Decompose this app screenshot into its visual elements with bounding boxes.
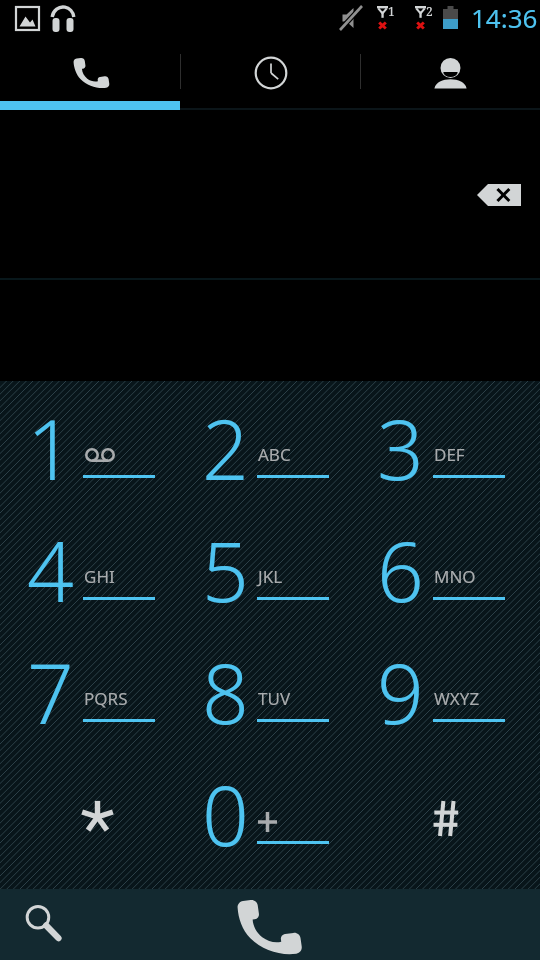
button[interactable]: 6 [354,507,530,627]
button[interactable]: Call log [181,40,360,110]
button[interactable]: Dial pad [0,40,180,110]
button[interactable]: Call [233,893,303,960]
staticText: 6 [377,514,424,626]
staticText: PQRS [84,687,128,710]
staticText: JKL [258,565,283,588]
staticText: 1 [388,3,395,19]
button[interactable]: 0 [178,751,354,871]
button[interactable]: Contacts [361,40,540,110]
staticText: MNO [434,565,476,588]
staticText: ABC [258,443,291,466]
button[interactable]: 3 [354,385,530,505]
staticText: 7 [27,636,74,748]
staticText: 5 [202,514,249,626]
staticText: WXYZ [434,687,480,710]
button[interactable]: 4 [2,507,178,627]
button[interactable]: 8 [178,629,354,749]
button[interactable] [354,751,530,871]
staticText: 1 [27,392,74,504]
staticText: 9 [377,636,424,748]
staticText: 4 [27,514,74,626]
button[interactable]: Search [14,893,68,947]
staticText: 0 [202,758,249,870]
staticText: GHI [84,565,115,588]
button[interactable]: 9 [354,629,530,749]
button[interactable]: Backspace [477,184,521,206]
staticText: 3 [377,392,424,504]
button[interactable] [2,751,178,871]
button[interactable]: 1 [2,385,178,505]
staticText: 8 [202,636,249,748]
staticText: TUV [258,687,291,710]
staticText: 2 [426,3,433,19]
button[interactable]: 5 [178,507,354,627]
staticText: DEF [434,443,465,466]
staticText: 14:36 [471,0,538,35]
staticText: 2 [202,392,249,504]
button[interactable]: 2 [178,385,354,505]
button[interactable]: 7 [2,629,178,749]
